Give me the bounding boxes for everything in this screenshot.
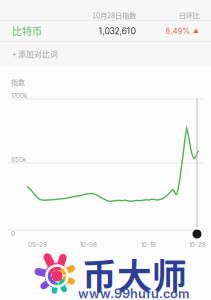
staticText: 指数 [11,77,25,87]
staticText: 8.49% [165,26,190,36]
staticText: 1700k [11,92,27,99]
staticText: 1,032,610 [98,26,135,36]
button[interactable]: 比特币 [12,24,42,38]
staticText: 10-08 [80,241,97,248]
staticText: 币大师 [82,249,187,299]
staticText: 850k [11,156,26,163]
staticText: ▲ [193,27,199,34]
staticText: 10-28 [189,241,206,248]
staticText: 日环比 [178,10,199,20]
button[interactable]: + 添加对比词 [0,42,211,66]
staticText: 10月28日指数 [92,10,136,20]
staticText: 比特币 [12,24,42,38]
staticText: 10-19 [141,241,156,248]
staticText: + 添加对比词 [12,48,58,60]
staticText: 09-29 [28,241,47,248]
staticText: www.99hufu.com [78,286,189,300]
staticText: 0 [11,230,15,237]
